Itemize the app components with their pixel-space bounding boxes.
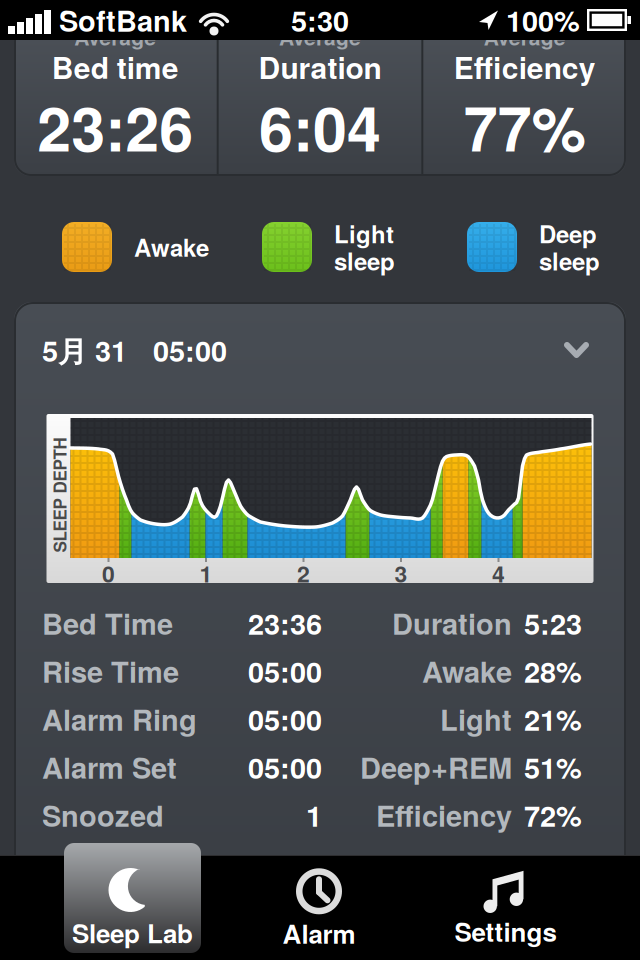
staticText: 23:36 bbox=[248, 607, 322, 639]
staticText: 28% bbox=[524, 655, 582, 687]
staticText: Alarm Ring bbox=[42, 703, 197, 735]
staticText: Deep sleep bbox=[539, 220, 600, 274]
staticText: Efficiency bbox=[376, 799, 512, 831]
staticText: Efficiency bbox=[454, 50, 596, 84]
staticText: 21% bbox=[524, 703, 582, 735]
staticText: Sleep Lab bbox=[72, 918, 193, 947]
staticText: 72% bbox=[524, 799, 582, 831]
staticText: 1 bbox=[199, 560, 212, 586]
staticText: 3 bbox=[394, 560, 407, 586]
staticText: Alarm bbox=[282, 918, 355, 948]
button[interactable]: Settings bbox=[437, 843, 574, 960]
staticText: 5:30 bbox=[291, 4, 349, 36]
staticText: 100% bbox=[506, 4, 580, 36]
staticText: Bed time bbox=[52, 50, 179, 84]
button[interactable]: 5月 31 bbox=[14, 302, 626, 398]
staticText: Awake bbox=[134, 233, 209, 261]
staticText: Awake bbox=[422, 655, 512, 687]
staticText: Average bbox=[74, 25, 156, 49]
staticText: Average bbox=[279, 25, 361, 49]
staticText: 5月 31 bbox=[42, 334, 127, 366]
staticText: 6:04 bbox=[259, 92, 381, 161]
staticText: 23:26 bbox=[37, 92, 193, 161]
button[interactable]: Sleep Lab bbox=[64, 843, 201, 960]
staticText: 1 bbox=[306, 799, 322, 831]
staticText: Light bbox=[440, 703, 512, 735]
staticText: SLEEP DEPTH bbox=[2, 485, 117, 505]
staticText: Rise Time bbox=[42, 655, 179, 687]
staticText: 05:00 bbox=[248, 703, 322, 735]
staticText: Bed Time bbox=[42, 607, 173, 639]
staticText: 05:00 bbox=[153, 334, 227, 366]
staticText: Duration bbox=[392, 607, 512, 639]
staticText: 5:23 bbox=[524, 607, 582, 639]
staticText: Snoozed bbox=[42, 799, 164, 831]
button[interactable]: Alarm bbox=[250, 843, 387, 960]
staticText: Average bbox=[484, 25, 566, 49]
staticText: Light sleep bbox=[334, 220, 395, 274]
staticText: 05:00 bbox=[248, 655, 322, 687]
staticText: Deep+REM bbox=[360, 751, 512, 783]
staticText: 4 bbox=[492, 560, 505, 586]
staticText: 51% bbox=[524, 751, 582, 783]
staticText: Alarm Set bbox=[42, 751, 177, 783]
staticText: Duration bbox=[258, 50, 381, 84]
staticText: 77% bbox=[464, 92, 586, 161]
staticText: 05:00 bbox=[248, 751, 322, 783]
staticText: 2 bbox=[297, 560, 310, 586]
staticText: 0 bbox=[102, 560, 115, 586]
staticText: Settings bbox=[454, 916, 556, 946]
staticText: SoftBank bbox=[59, 4, 187, 36]
